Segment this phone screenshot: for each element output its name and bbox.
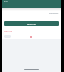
staticText: 9:41: [4, 0, 8, 3]
staticText: Sign up: [4, 30, 13, 33]
button[interactable]: [4, 35, 11, 38]
button[interactable]: Sign up: [4, 30, 13, 33]
staticText: SIGN IN: [27, 22, 37, 25]
button[interactable]: Forgot password?: [49, 13, 59, 14]
button[interactable]: SIGN IN: [4, 21, 59, 26]
